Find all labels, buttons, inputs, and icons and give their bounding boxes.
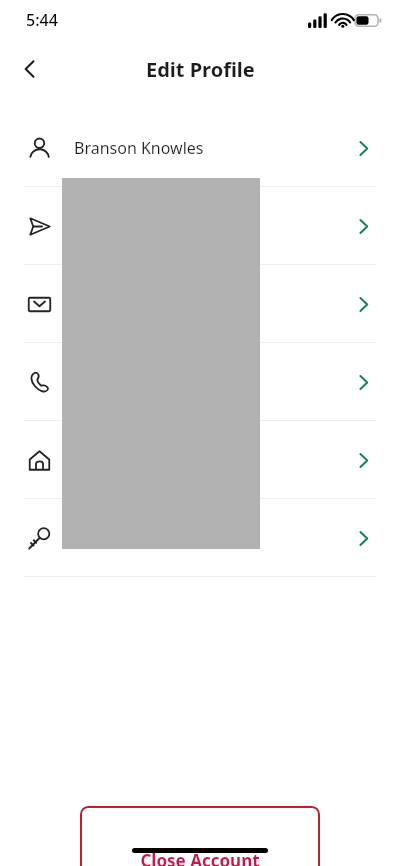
- button[interactable]: Name: [0, 109, 400, 186]
- button[interactable]: Home address: [0, 421, 400, 498]
- button[interactable]: Email: [0, 265, 400, 342]
- button[interactable]: Password: [0, 499, 400, 576]
- button[interactable]: Back: [8, 47, 52, 91]
- button[interactable]: Address line: [0, 187, 400, 264]
- staticText: Close Account: [140, 849, 260, 866]
- staticText: 5:44: [26, 9, 58, 31]
- staticText: Branson Knowles: [74, 137, 204, 159]
- staticText: Edit Profile: [146, 56, 255, 83]
- button[interactable]: Close Account: [80, 806, 320, 866]
- button[interactable]: Phone: [0, 343, 400, 420]
